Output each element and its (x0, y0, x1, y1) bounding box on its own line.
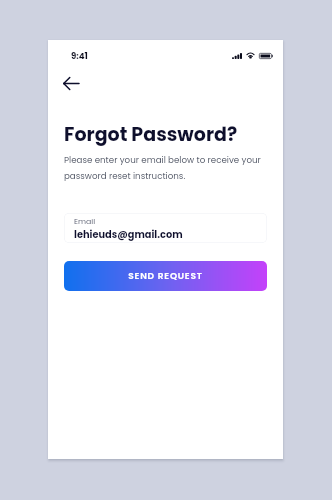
staticText: SEND REQUEST (128, 270, 203, 283)
button[interactable]: SEND REQUEST (64, 261, 267, 291)
staticText: Forgot Password? (64, 121, 238, 148)
staticText: Please enter your email below to receive… (64, 154, 267, 182)
button[interactable]: Back (56, 68, 86, 98)
staticText: lehieuds@gmail.com (74, 228, 183, 242)
staticText: Email (74, 216, 96, 227)
staticText: 9:41 (71, 50, 88, 62)
button[interactable]: Email (64, 213, 267, 243)
